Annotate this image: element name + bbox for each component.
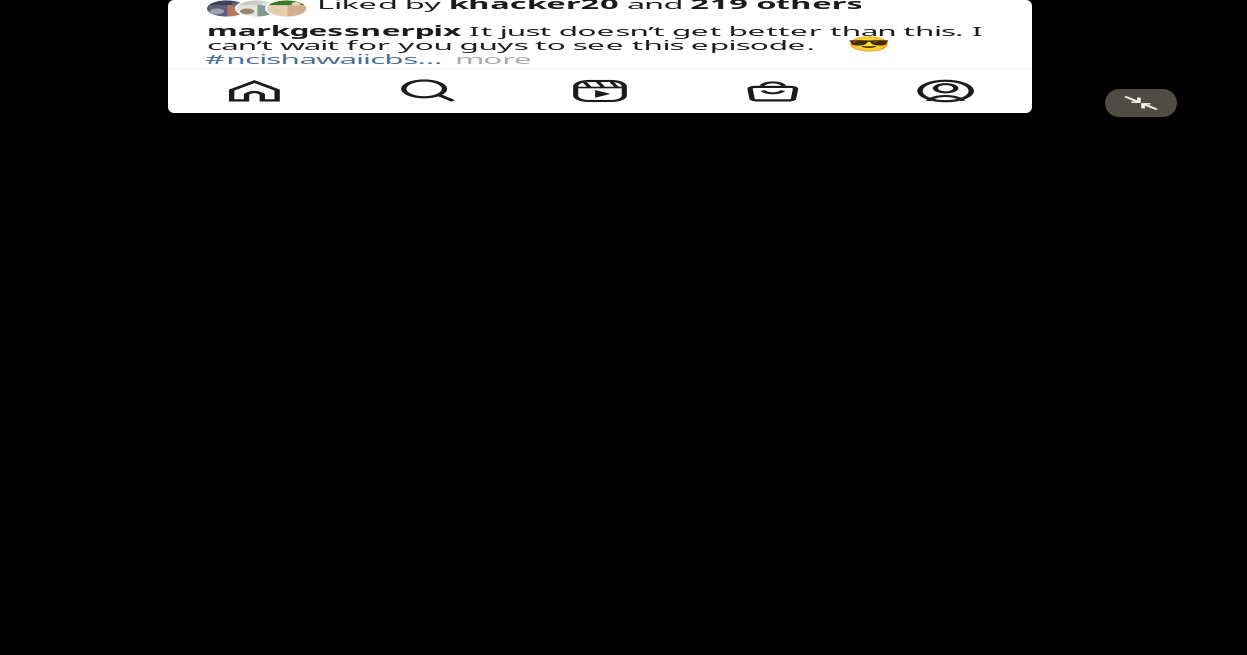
staticText: 😎 [847,36,865,53]
staticText: Liked by khacker20 and 219 others [317,0,541,13]
staticText: #ncishawaiicbs… [205,50,306,68]
button[interactable]: Search [341,69,514,113]
button[interactable]: Shop [686,69,859,113]
button[interactable]: Reels [514,69,686,113]
staticText: can’t wait for you guys to see this epis… [207,36,468,54]
staticText: more [455,50,488,68]
button[interactable]: Exit full screen [1105,89,1177,117]
button[interactable]: Profile [859,69,1032,113]
staticText: markgessnerpix It just doesn’t get bette… [207,22,536,40]
button[interactable]: Home [168,69,341,113]
